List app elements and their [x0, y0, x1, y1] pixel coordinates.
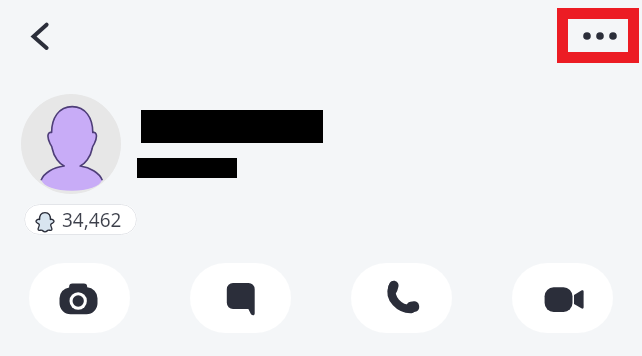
button[interactable]: 34,462	[24, 204, 137, 235]
button[interactable]: Camera	[29, 263, 130, 333]
button[interactable]: Back	[15, 14, 60, 59]
staticText: 34,462	[62, 207, 122, 233]
button[interactable]: Call	[351, 263, 452, 333]
button[interactable]: Chat	[190, 263, 291, 333]
button[interactable]: More options	[557, 8, 639, 63]
button[interactable]: Video call	[512, 263, 613, 333]
